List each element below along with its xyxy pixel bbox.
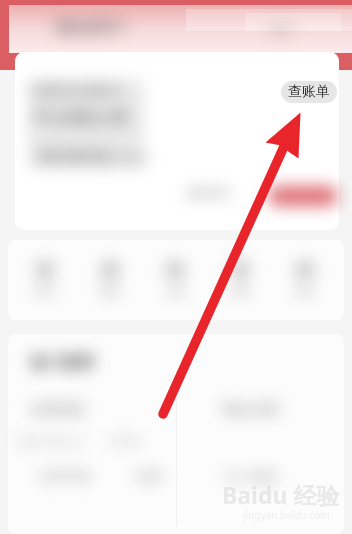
button[interactable]: 更多 [279,260,331,298]
staticText: 08月25日 [96,150,148,166]
button[interactable] [15,52,339,230]
staticText: 热门推荐 [30,353,94,373]
staticText: 本期应还金额(元) [31,81,123,97]
staticText: 查账单 [288,83,330,101]
staticText: 我的信用卡 [55,19,125,37]
button[interactable]: 分期 [149,260,201,298]
staticText: 最后还款日 [38,148,108,166]
staticText: 信用贷款 [30,401,86,419]
staticText: Baidu 经验 [222,479,340,510]
staticText: ￥3,862.45 [29,103,129,130]
staticText: 管理 [268,22,292,37]
button[interactable]: 额度 [84,260,136,298]
button[interactable]: 优惠 [214,260,266,298]
button[interactable]: 查账单 [281,81,337,103]
button[interactable]: 账单 [19,260,71,298]
staticText: 现金分期 [222,401,278,419]
staticText: 马上借钱 [224,468,276,484]
staticText: jingyan.baidu.com [243,508,330,522]
button[interactable] [268,186,338,206]
